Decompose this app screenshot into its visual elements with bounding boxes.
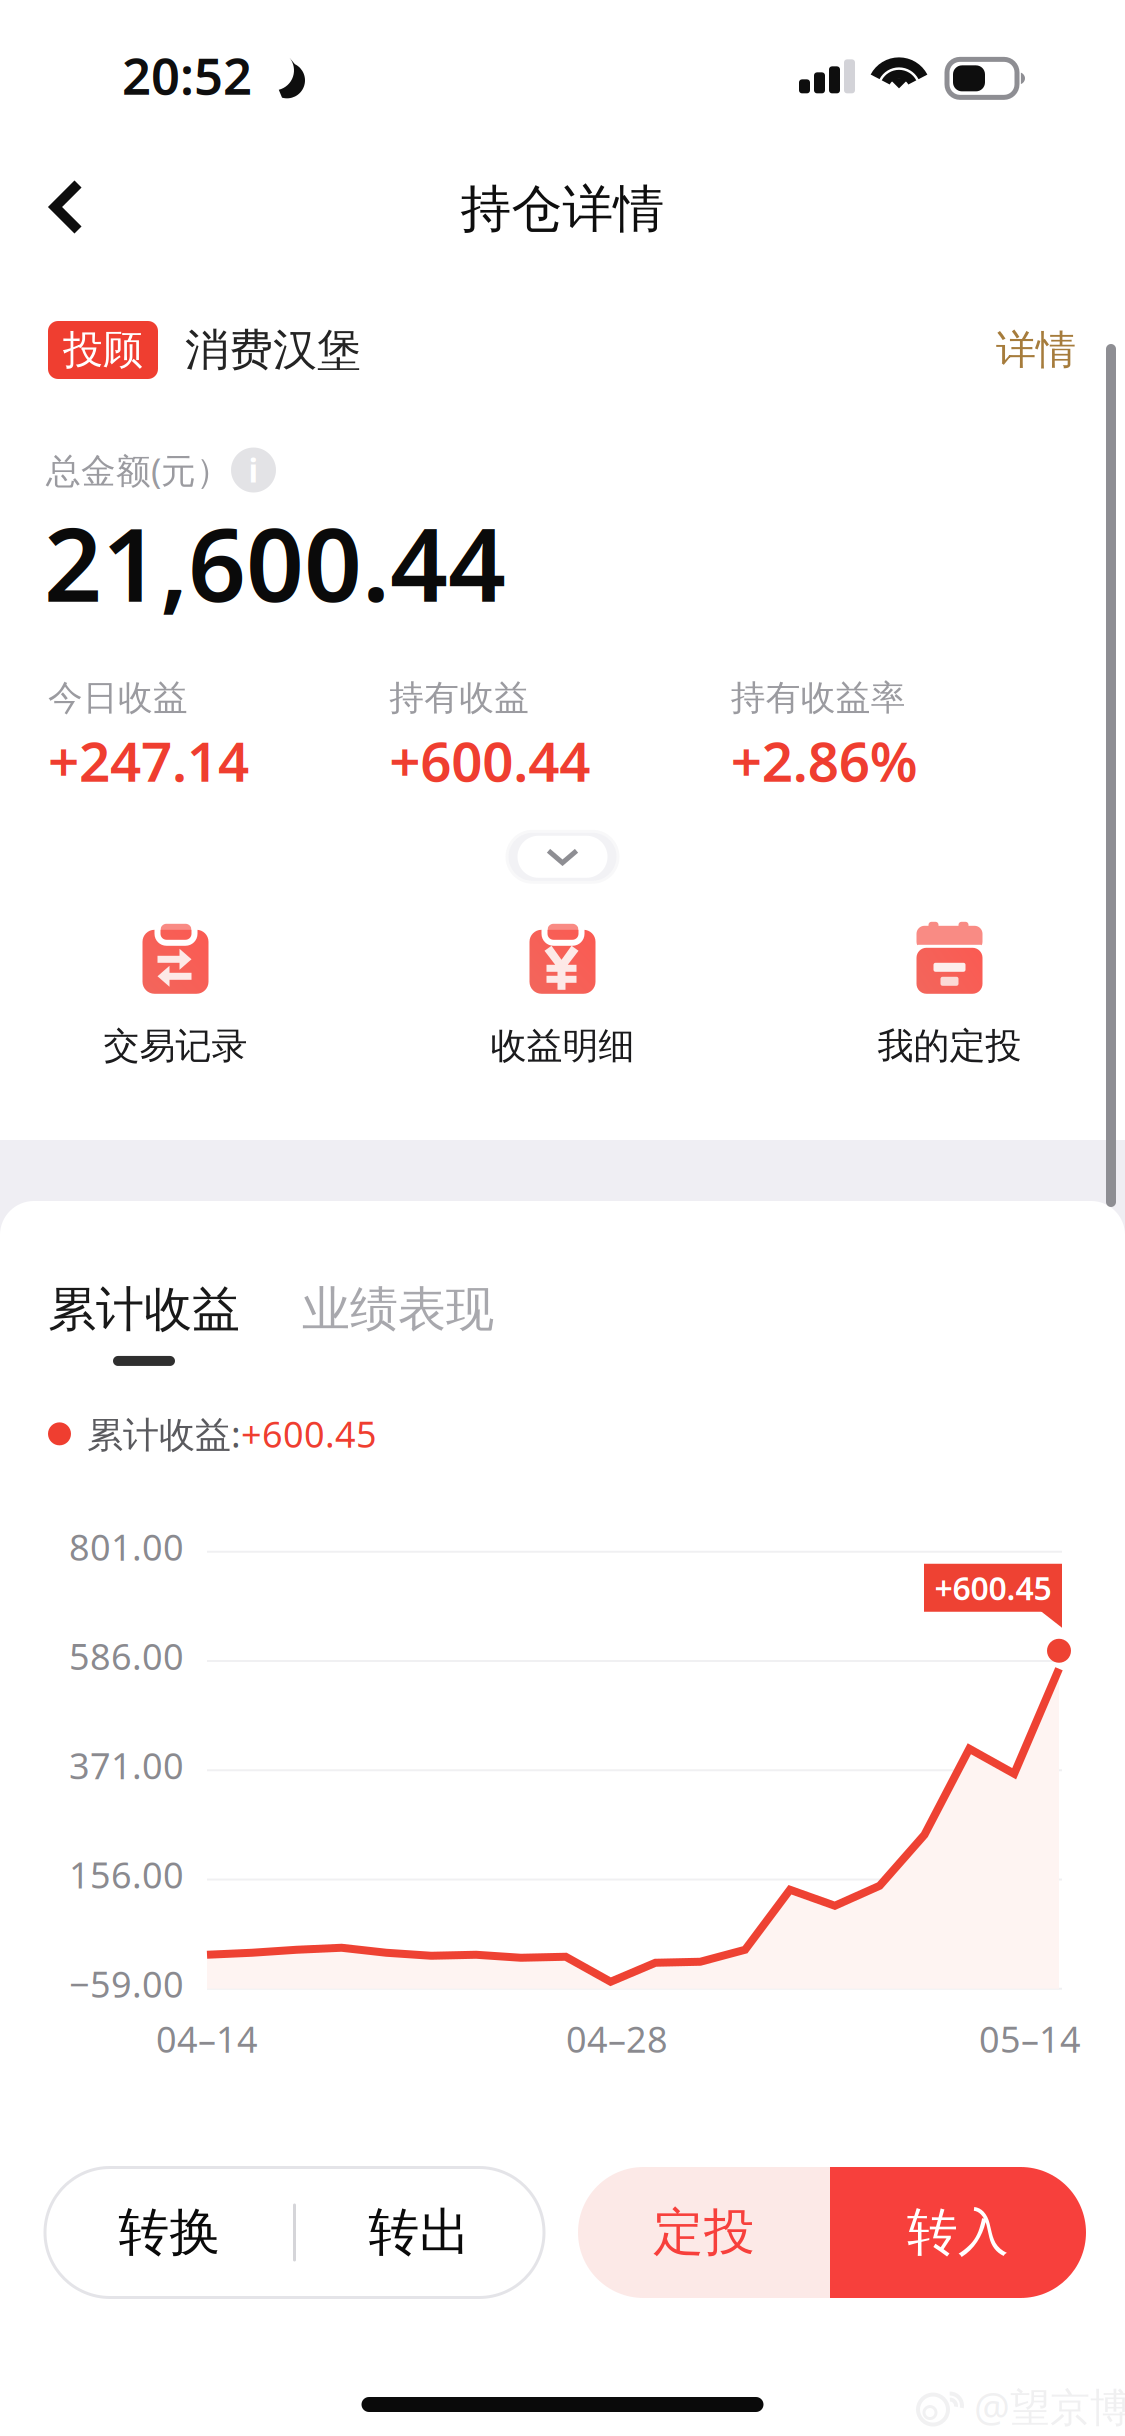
- staticText: 持仓详情: [460, 178, 664, 240]
- staticText: −59.00: [69, 1960, 184, 2008]
- staticText: 20:52: [122, 41, 252, 109]
- staticText: 05–14: [979, 2015, 1081, 2063]
- staticText: 21,600.44: [44, 495, 506, 630]
- staticText: 总金额(元）: [46, 447, 231, 493]
- button[interactable]: Expand details: [505, 830, 619, 884]
- staticText: 收益明细: [490, 1024, 634, 1068]
- button[interactable]: 我的定投: [756, 922, 1125, 1068]
- staticText: 定投: [653, 2201, 755, 2264]
- staticText: 累计收益: [48, 1280, 240, 1339]
- staticText: 371.00: [69, 1741, 184, 1789]
- button[interactable]: 交易记录: [0, 922, 369, 1068]
- staticText: 04–28: [566, 2015, 668, 2063]
- staticText: 转换: [118, 2201, 220, 2264]
- staticText: +247.14: [48, 724, 249, 797]
- staticText: 转入: [907, 2201, 1009, 2264]
- button[interactable]: Back: [0, 176, 120, 248]
- staticText: 转出: [368, 2201, 470, 2264]
- staticText: +600.45: [241, 1410, 377, 1458]
- staticText: 交易记录: [103, 1024, 247, 1068]
- staticText: 今日收益: [48, 677, 188, 719]
- staticText: +600.45: [934, 1566, 1051, 1609]
- button[interactable]: 详情: [996, 325, 1076, 374]
- staticText: 累计收益:: [87, 1410, 241, 1458]
- staticText: @望京博格: [974, 2380, 1125, 2433]
- staticText: +600.44: [389, 724, 590, 797]
- staticText: 我的定投: [877, 1024, 1021, 1068]
- staticText: +2.86%: [731, 724, 918, 797]
- staticText: 156.00: [69, 1850, 184, 1898]
- staticText: 04–14: [156, 2015, 258, 2063]
- staticText: 投顾: [63, 325, 143, 374]
- staticText: 详情: [996, 325, 1076, 374]
- button[interactable]: 转入: [830, 2167, 1086, 2298]
- button[interactable]: 业绩表现: [302, 1280, 494, 1339]
- staticText: i: [248, 449, 258, 491]
- staticText: 586.00: [69, 1632, 184, 1680]
- staticText: 消费汉堡: [185, 323, 361, 377]
- staticText: 业绩表现: [302, 1280, 494, 1339]
- button[interactable]: 收益明细: [369, 922, 756, 1068]
- staticText: 801.00: [69, 1523, 184, 1571]
- button[interactable]: 累计收益: [48, 1280, 240, 1366]
- button[interactable]: 转出: [296, 2167, 543, 2297]
- button[interactable]: 转换: [46, 2167, 293, 2297]
- button[interactable]: 定投: [578, 2167, 830, 2298]
- staticText: 持有收益率: [731, 677, 906, 719]
- staticText: 持有收益: [389, 677, 529, 719]
